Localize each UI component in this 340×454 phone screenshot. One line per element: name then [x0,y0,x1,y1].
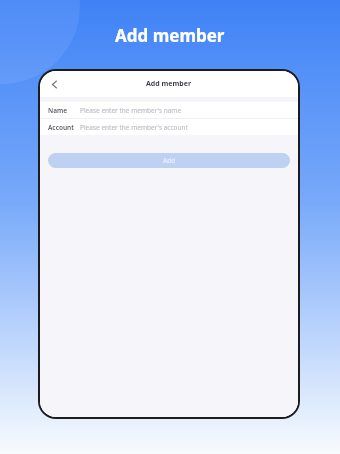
staticText: Please enter the member's account [80,123,188,132]
button[interactable]: Name [40,102,298,118]
button[interactable]: Add [48,153,290,168]
staticText: Name [48,106,67,115]
staticText: Add [163,156,176,165]
staticText: Add member [115,24,225,47]
staticText: Add member [146,79,192,89]
staticText: Account [48,123,74,132]
button[interactable]: Back [44,74,64,94]
button[interactable]: Account [40,119,298,135]
staticText: Please enter the member's name [80,106,182,115]
